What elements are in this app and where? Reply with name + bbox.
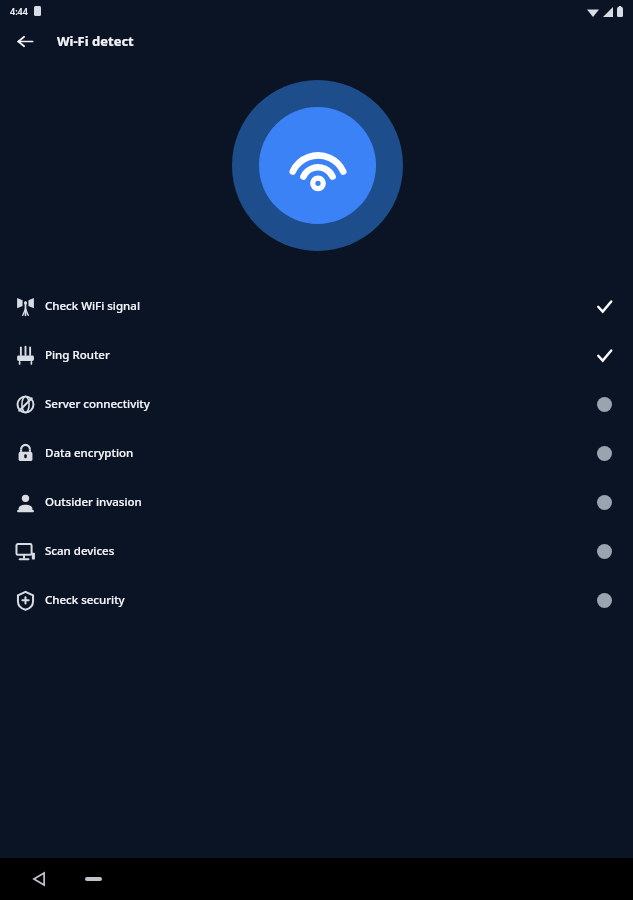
- button[interactable]: Back: [11, 27, 39, 55]
- button[interactable]: Ping Router: [0, 330, 633, 379]
- staticText: Server connectivity: [45, 396, 150, 412]
- button[interactable]: Data encryption: [0, 428, 633, 477]
- staticText: 4:44: [10, 5, 28, 17]
- button[interactable]: Check security: [0, 575, 633, 624]
- button[interactable]: Server connectivity: [0, 379, 633, 428]
- staticText: Check security: [45, 592, 125, 608]
- button[interactable]: Start Wi-Fi detect: [232, 80, 403, 251]
- staticText: Ping Router: [45, 347, 110, 363]
- button[interactable]: Scan devices: [0, 526, 633, 575]
- button[interactable]: Home: [78, 864, 108, 894]
- button[interactable]: Check WiFi signal: [0, 281, 633, 330]
- staticText: Outsider invasion: [45, 494, 142, 510]
- staticText: Scan devices: [45, 543, 115, 559]
- button[interactable]: Back: [24, 864, 54, 894]
- staticText: Wi-Fi detect: [57, 32, 134, 50]
- button[interactable]: Outsider invasion: [0, 477, 633, 526]
- staticText: Data encryption: [45, 445, 134, 461]
- staticText: Check WiFi signal: [45, 298, 140, 314]
